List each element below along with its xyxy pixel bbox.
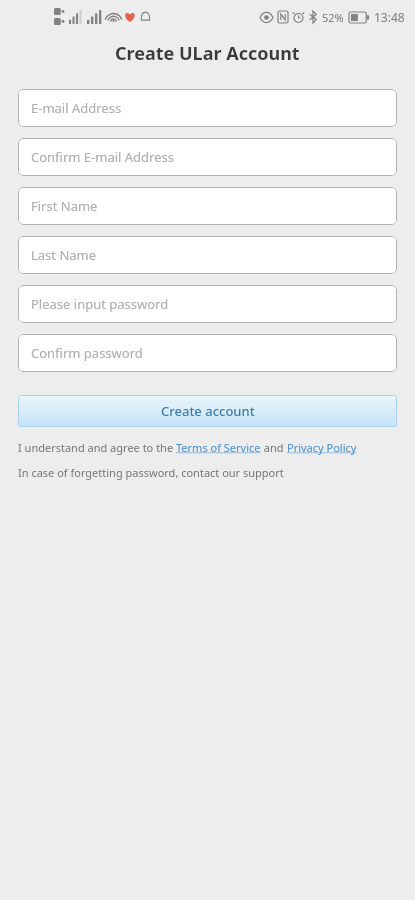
staticText: Create ULar Account xyxy=(115,41,300,66)
button[interactable]: Create account xyxy=(18,395,397,427)
staticText: I understand and agree to the xyxy=(18,440,176,455)
button[interactable]: Privacy Policy xyxy=(287,440,357,455)
button[interactable]: Please input password xyxy=(18,285,397,323)
button[interactable]: First Name xyxy=(18,187,397,225)
staticText: 13:48 xyxy=(374,9,405,25)
button[interactable]: Last Name xyxy=(18,236,397,274)
staticText: Last Name xyxy=(31,246,97,264)
staticText: Confirm password xyxy=(31,344,143,362)
button[interactable]: E-mail Address xyxy=(18,89,397,127)
staticText: In case of forgetting password, contact … xyxy=(18,465,284,480)
staticText: Please input password xyxy=(31,295,169,313)
staticText: Create account xyxy=(161,402,255,420)
button[interactable]: Confirm E-mail Address xyxy=(18,138,397,176)
staticText: Confirm E-mail Address xyxy=(31,148,174,166)
staticText: and xyxy=(261,440,287,455)
button[interactable]: Terms of Service xyxy=(176,440,261,455)
staticText: Terms of Service xyxy=(176,440,261,455)
button[interactable]: Confirm password xyxy=(18,334,397,372)
staticText: 52% xyxy=(322,10,344,25)
staticText: Privacy Policy xyxy=(287,440,357,455)
staticText: First Name xyxy=(31,197,98,215)
staticText: E-mail Address xyxy=(31,99,122,117)
